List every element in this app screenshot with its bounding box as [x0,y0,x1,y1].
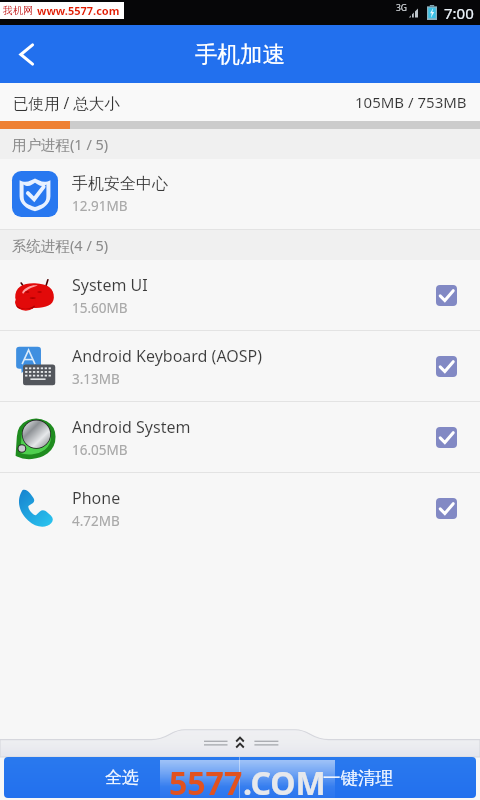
staticText: 全选 [105,767,139,788]
staticText: 16.05MB [72,441,128,459]
staticText: 手机安全中心 [72,174,168,194]
button[interactable]: 手机安全中心 [0,159,480,229]
button[interactable]: Android Keyboard (AOSP) [0,331,480,401]
staticText: 系统进程(4 / 5) [12,235,109,255]
button[interactable]: Android System [0,402,480,472]
button[interactable]: Select process [436,498,457,519]
button[interactable]: Back [0,25,52,83]
staticText: 7:00 [444,3,474,23]
staticText: 已使用 / 总大小 [13,92,120,113]
button[interactable]: System UI [0,260,480,330]
staticText: 4.72MB [72,512,120,530]
staticText: 15.60MB [72,299,128,317]
staticText: 用户进程(1 / 5) [12,134,109,154]
staticText: 一键清理 [323,767,393,789]
staticText: 5577 [169,761,243,800]
staticText: www.5577.com [37,3,120,18]
button[interactable]: Select process [436,427,457,448]
staticText: System UI [72,274,148,296]
staticText: 12.91MB [72,197,128,215]
staticText: Android System [72,416,191,438]
staticText: 我机网 [3,4,33,17]
staticText: 手机加速 [195,40,285,68]
staticText: Android Keyboard (AOSP) [72,345,263,367]
button[interactable]: Phone [0,473,480,543]
button[interactable]: Select process [436,356,457,377]
staticText: Phone [72,487,121,509]
button[interactable]: 全选 [4,757,239,798]
staticText: 3G [396,2,408,14]
button[interactable]: Select process [436,285,457,306]
button[interactable]: Expand panel [0,728,480,757]
staticText: .COM [243,761,326,800]
staticText: 3.13MB [72,370,120,388]
staticText: 105MB / 753MB [355,92,467,112]
button[interactable]: 一键清理 [240,757,476,798]
